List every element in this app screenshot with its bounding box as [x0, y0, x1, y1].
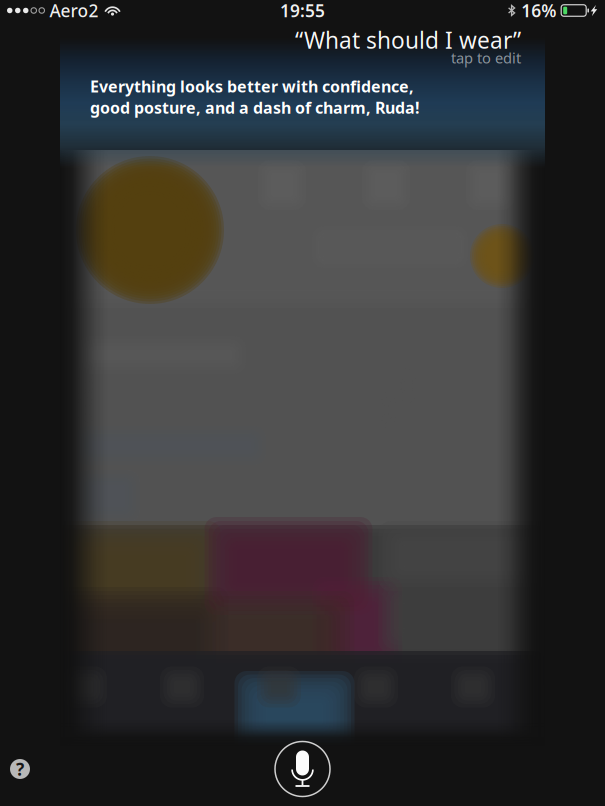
staticText: 16% [521, 0, 556, 22]
staticText: Aero2 [49, 0, 98, 22]
staticText: 19:55 [280, 0, 325, 22]
button[interactable]: Speak to Siri [268, 735, 336, 803]
button[interactable]: “What should I wear” [0, 21, 605, 68]
staticText: Everything looks better with confidence, [90, 76, 414, 97]
staticText: ? [16, 757, 24, 780]
button[interactable]: Siri help [5, 754, 35, 784]
staticText: “What should I wear” [295, 25, 521, 55]
staticText: good posture, and a dash of charm, Ruda! [90, 97, 420, 118]
staticText: tap to edit [451, 48, 521, 68]
